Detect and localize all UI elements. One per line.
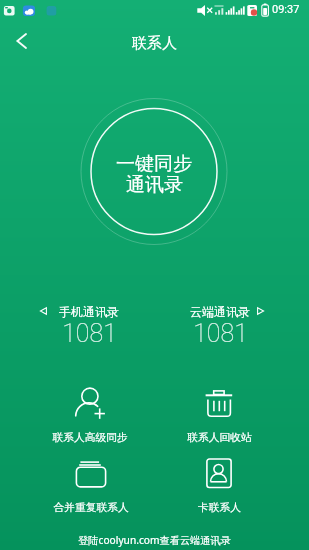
staticText: 1081 [62, 319, 117, 348]
staticText: 一键同步 [116, 152, 192, 176]
button[interactable]: 手机通讯录 [39, 301, 139, 346]
staticText: 09:37 [272, 3, 300, 16]
button[interactable]: 联系人高级同步 [50, 383, 130, 445]
staticText: 合并重复联系人 [53, 501, 129, 515]
button[interactable]: 联系人回收站 [179, 383, 259, 445]
staticText: 联系人高级同步 [52, 431, 128, 445]
staticText: 联系人回收站 [187, 431, 252, 445]
button[interactable]: Back [3, 22, 39, 60]
button[interactable]: 云端通讯录 [170, 301, 270, 346]
staticText: 联系人 [132, 34, 177, 53]
staticText: 卡联系人 [198, 501, 241, 515]
button[interactable]: 合并重复联系人 [51, 456, 131, 515]
staticText: 通讯录 [126, 173, 183, 197]
button[interactable]: 一键同步 [91, 108, 217, 234]
button[interactable]: 卡联系人 [179, 454, 259, 515]
staticText: 云端通讯录 [190, 304, 250, 319]
staticText: 1081 [193, 319, 248, 348]
button[interactable]: 登陆coolyun.com查看云端通讯录 [78, 533, 231, 547]
staticText: 手机通讯录 [59, 304, 119, 319]
